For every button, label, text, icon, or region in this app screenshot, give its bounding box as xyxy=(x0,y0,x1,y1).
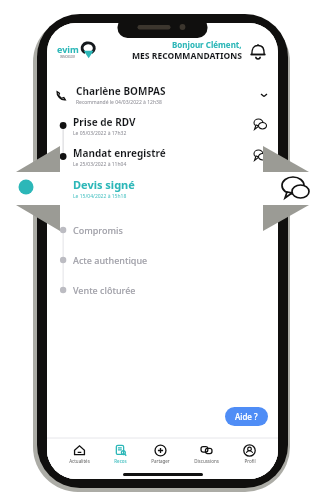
button[interactable]: Mandat enregistré xyxy=(47,141,278,172)
staticText: Recommandé le 04/03/2022 à 12h38 xyxy=(76,99,162,106)
staticText: MES RECOMMANDATIONS xyxy=(132,50,242,62)
staticText: Mandat enregistré xyxy=(73,146,166,160)
staticText: Le 25/03/2022 à 11h04 xyxy=(73,161,127,168)
staticText: Prise de RDV xyxy=(73,115,136,129)
button[interactable]: Aide ? xyxy=(225,407,268,426)
staticText: IMMOBILIER xyxy=(60,55,76,58)
button[interactable]: Partager xyxy=(149,444,172,464)
staticText: Actualités xyxy=(69,458,90,464)
staticText: Le 05/03/2022 à 17h32 xyxy=(73,130,127,137)
other: Message xyxy=(254,119,268,133)
staticText: Recos xyxy=(114,458,127,464)
staticText: Charlène BOMPAS xyxy=(76,84,166,98)
button[interactable]: Charlène BOMPAS xyxy=(47,80,278,110)
button[interactable]: Profil xyxy=(241,444,258,464)
staticText: Partager xyxy=(151,458,170,464)
button[interactable]: Discussions xyxy=(192,444,221,464)
button[interactable]: Vente clôturée xyxy=(47,275,278,305)
staticText: Devis signé xyxy=(73,177,135,192)
button[interactable]: Recos xyxy=(112,444,129,464)
staticText: Discussions xyxy=(194,458,219,464)
button[interactable]: Prise de RDV xyxy=(47,110,278,141)
staticText: Le 15/04/2022 à 15h18 xyxy=(73,193,127,200)
staticText: Profil xyxy=(244,458,256,464)
staticText: Bonjour Clément, xyxy=(172,39,242,50)
button[interactable]: Actualités xyxy=(67,444,92,464)
button[interactable]: Acte authentique xyxy=(47,245,278,275)
staticText: Acte authentique xyxy=(73,254,148,266)
staticText: Aide ? xyxy=(235,411,258,422)
staticText: Vente clôturée xyxy=(73,284,136,296)
button[interactable]: Devis signé xyxy=(47,172,278,205)
button[interactable]: Notifications xyxy=(248,41,268,61)
button[interactable]: Compromis xyxy=(47,215,278,245)
staticText: Compromis xyxy=(73,224,123,236)
other: Message xyxy=(254,150,268,164)
staticText: evim xyxy=(57,43,79,55)
